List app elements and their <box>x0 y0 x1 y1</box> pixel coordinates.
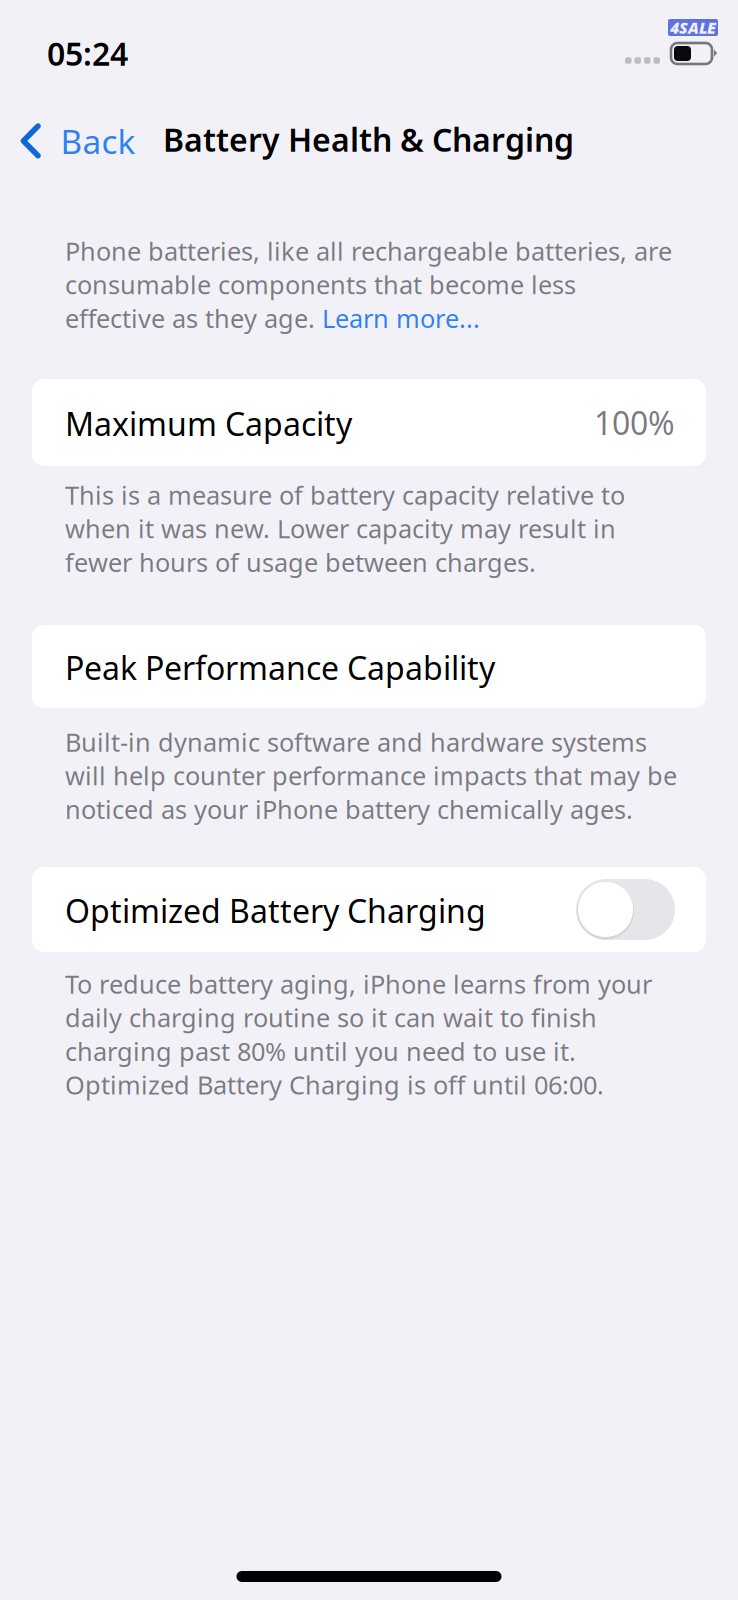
button[interactable]: Learn more about battery health <box>324 304 480 338</box>
staticText: Optimized Battery Charging <box>65 889 486 932</box>
staticText: Back <box>60 119 135 163</box>
staticText: This is a measure of battery capacity re… <box>65 478 625 579</box>
staticText: 100% <box>594 401 675 444</box>
staticText: Maximum Capacity <box>65 402 352 445</box>
staticText: 05:24 <box>47 32 128 74</box>
staticText: Built-in dynamic software and hardware s… <box>65 725 677 826</box>
staticText: Peak Performance Capability <box>65 646 495 689</box>
staticText: To reduce battery aging, iPhone learns f… <box>65 967 652 1102</box>
staticText: Battery Health & Charging <box>163 118 574 160</box>
button[interactable]: Back <box>20 112 148 170</box>
button[interactable]: Peak Performance Capability <box>32 625 706 708</box>
staticText: Phone batteries, like all rechargeable b… <box>65 234 672 335</box>
button[interactable]: Optimized Battery Charging <box>32 867 706 952</box>
staticText: 4SALE <box>670 17 716 38</box>
button[interactable]: Maximum Capacity <box>32 379 706 466</box>
